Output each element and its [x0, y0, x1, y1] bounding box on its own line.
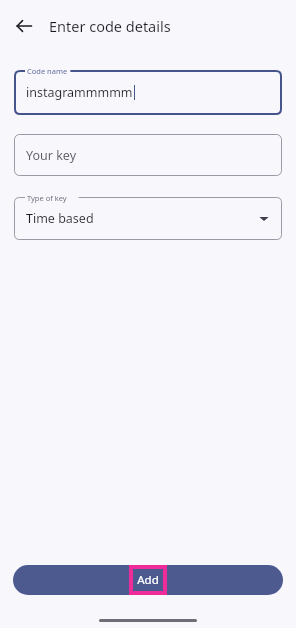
button[interactable]: Your key — [14, 134, 282, 176]
staticText: instagrammmmm — [26, 84, 133, 101]
staticText: Enter code details — [49, 16, 171, 36]
button[interactable]: Type of key — [14, 197, 282, 240]
button[interactable]: Back — [10, 12, 38, 40]
staticText: Add — [137, 572, 159, 588]
staticText: Time based — [26, 210, 94, 227]
button[interactable]: Code name — [14, 70, 282, 115]
button[interactable]: Add — [13, 565, 283, 595]
staticText: Type of key — [27, 193, 67, 203]
staticText: Code name — [27, 66, 68, 76]
staticText: Your key — [26, 147, 77, 164]
